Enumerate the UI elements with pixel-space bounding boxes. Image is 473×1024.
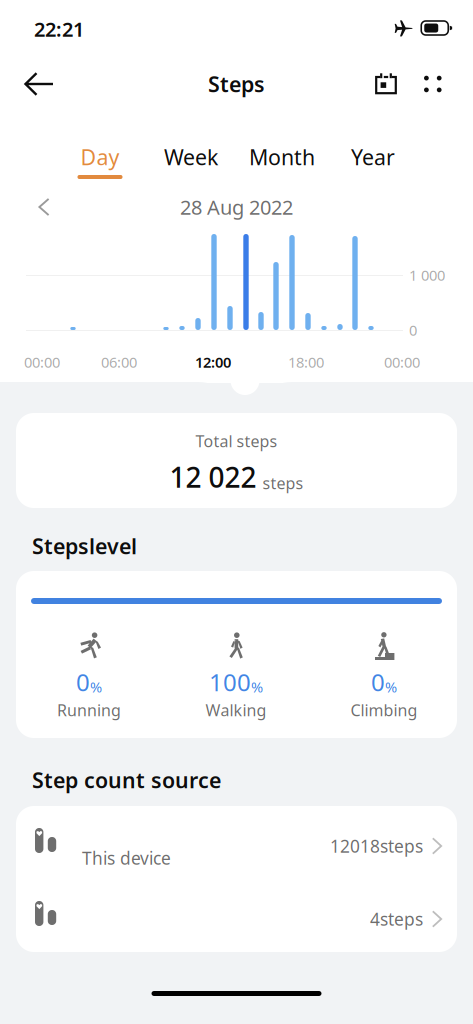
button[interactable]: More options bbox=[410, 60, 456, 108]
staticText: steps bbox=[262, 472, 303, 493]
staticText: % bbox=[251, 677, 263, 696]
staticText: Month bbox=[249, 143, 315, 171]
staticText: Day bbox=[80, 143, 119, 171]
staticText: % bbox=[90, 677, 102, 696]
staticText: 18:00 bbox=[288, 352, 324, 372]
staticText: 12018steps bbox=[330, 834, 423, 857]
staticText: This device bbox=[82, 846, 171, 869]
staticText: 06:00 bbox=[101, 352, 137, 372]
staticText: 4steps bbox=[370, 907, 423, 930]
button[interactable]: Previous day bbox=[22, 190, 66, 224]
staticText: Total steps bbox=[195, 430, 277, 452]
staticText: Steps bbox=[208, 70, 265, 98]
staticText: 22:21 bbox=[34, 16, 84, 42]
button[interactable]: 4steps bbox=[16, 879, 457, 952]
button[interactable]: Day bbox=[54, 143, 145, 191]
staticText: 1 000 bbox=[409, 265, 445, 285]
staticText: Step count source bbox=[32, 766, 221, 794]
staticText: 0 bbox=[76, 666, 90, 698]
staticText: Year bbox=[351, 143, 395, 171]
staticText: Running bbox=[57, 699, 121, 721]
staticText: 100 bbox=[209, 666, 251, 698]
staticText: 0 bbox=[371, 666, 385, 698]
staticText: 00:00 bbox=[384, 352, 420, 372]
staticText: Walking bbox=[205, 699, 266, 721]
staticText: 00:00 bbox=[24, 352, 60, 372]
button[interactable]: Calendar bbox=[362, 60, 410, 108]
button[interactable]: Week bbox=[145, 143, 236, 191]
staticText: 12:00 bbox=[195, 352, 231, 372]
staticText: Climbing bbox=[350, 699, 417, 721]
button[interactable]: Year bbox=[327, 143, 418, 191]
button[interactable]: Month bbox=[236, 143, 327, 191]
button[interactable]: Back bbox=[10, 58, 68, 110]
staticText: Stepslevel bbox=[32, 532, 137, 560]
staticText: Week bbox=[164, 143, 218, 171]
staticText: 0 bbox=[409, 320, 417, 340]
button[interactable]: This device bbox=[16, 806, 457, 879]
staticText: % bbox=[385, 677, 397, 696]
staticText: 28 Aug 2022 bbox=[180, 194, 293, 220]
staticText: 12 022 bbox=[169, 458, 256, 496]
